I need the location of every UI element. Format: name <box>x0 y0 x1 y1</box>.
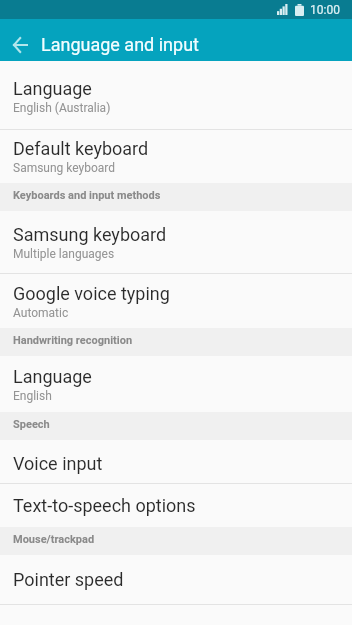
staticText: Pointer speed <box>13 569 124 590</box>
button[interactable]: Default keyboard <box>0 130 352 183</box>
staticText: Samsung keyboard <box>13 161 116 175</box>
staticText: Google voice typing <box>13 283 170 304</box>
staticText: Default keyboard <box>13 138 149 159</box>
staticText: Voice input <box>13 453 103 474</box>
staticText: Language <box>13 78 92 99</box>
button[interactable]: Pointer speed <box>0 555 352 604</box>
staticText: Multiple languages <box>13 247 115 261</box>
button[interactable]: Google voice typing <box>0 274 352 328</box>
staticText: Speech <box>13 418 50 431</box>
staticText: Language <box>13 366 92 387</box>
staticText: Language and input <box>41 34 199 55</box>
staticText: Mouse/trackpad <box>13 533 95 546</box>
staticText: 10:00 <box>310 3 340 17</box>
staticText: English <box>13 389 52 403</box>
staticText: English (Australia) <box>13 101 111 115</box>
staticText: Handwriting recognition <box>13 334 133 347</box>
button[interactable] <box>0 28 41 61</box>
button[interactable]: Samsung keyboard <box>0 211 352 273</box>
button[interactable]: Language <box>0 356 352 412</box>
staticText: Automatic <box>13 306 69 320</box>
button[interactable]: Voice input <box>0 440 352 483</box>
staticText: Samsung keyboard <box>13 224 167 245</box>
button[interactable]: Language <box>0 61 352 129</box>
button[interactable]: Text-to-speech options <box>0 484 352 527</box>
staticText: Keyboards and input methods <box>13 189 161 202</box>
staticText: Text-to-speech options <box>13 495 196 516</box>
